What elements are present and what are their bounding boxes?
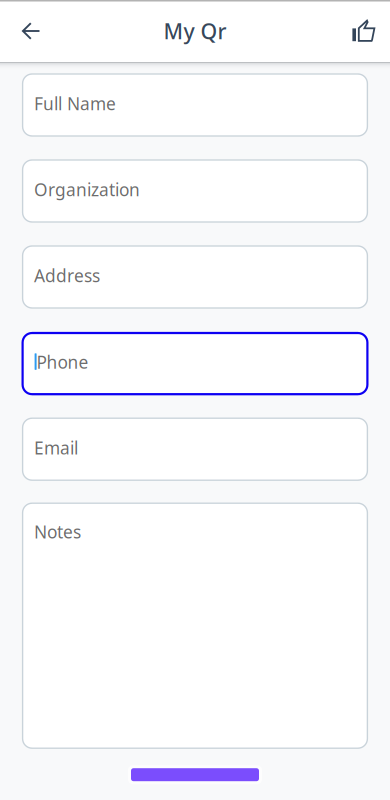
staticText: Notes [34, 520, 81, 543]
button[interactable]: Like [336, 0, 390, 62]
button[interactable]: Back [0, 0, 62, 62]
staticText: Full Name [34, 92, 116, 115]
staticText: Address [34, 264, 100, 287]
button[interactable]: Save [128, 765, 262, 784]
staticText: Email [34, 436, 78, 459]
staticText: My Qr [163, 17, 226, 45]
staticText: Phone [37, 351, 89, 374]
staticText: Organization [34, 178, 140, 201]
